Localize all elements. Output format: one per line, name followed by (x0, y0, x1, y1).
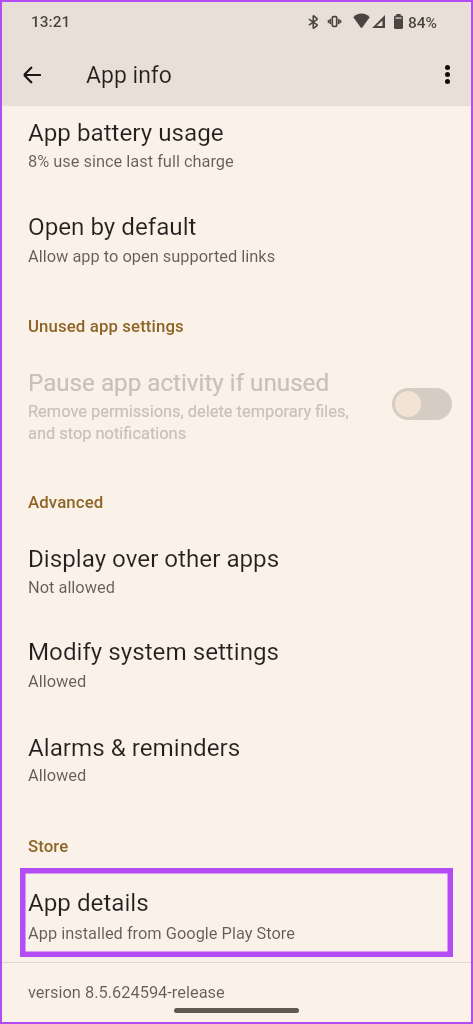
staticText: Remove permissions, delete temporary fil… (28, 402, 349, 443)
staticText: App installed from Google Play Store (28, 924, 295, 943)
button[interactable]: App details (20, 868, 453, 957)
staticText: version 8.5.624594-release (28, 983, 225, 1002)
staticText: App details (28, 889, 149, 917)
staticText: Modify system settings (28, 638, 280, 666)
button[interactable]: Back (13, 55, 52, 94)
button[interactable]: Modify system settings (0, 638, 473, 693)
staticText: Store (28, 836, 69, 856)
staticText: Advanced (28, 492, 104, 512)
staticText: Allow app to open supported links (28, 247, 276, 266)
staticText: 84% (408, 14, 438, 32)
staticText: Allowed (28, 766, 87, 785)
staticText: App info (86, 62, 172, 89)
staticText: 8% use since last full charge (28, 152, 234, 171)
staticText: App battery usage (28, 119, 224, 147)
staticText: 13:21 (31, 13, 71, 31)
staticText: Pause app activity if unused (28, 369, 330, 397)
button[interactable]: App battery usage (0, 119, 473, 173)
staticText: Not allowed (28, 578, 115, 597)
button[interactable]: Pause app activity if unused (0, 369, 473, 443)
staticText: Display over other apps (28, 545, 280, 573)
button[interactable]: Display over other apps (0, 545, 473, 599)
staticText: Alarms & reminders (28, 734, 241, 762)
button[interactable]: Alarms & reminders (0, 734, 473, 787)
staticText: Allowed (28, 672, 87, 691)
button[interactable]: Open by default (0, 213, 473, 268)
button[interactable]: Pause app activity if unused (392, 388, 452, 420)
staticText: Open by default (28, 213, 197, 241)
button[interactable]: More options (428, 55, 467, 94)
staticText: Unused app settings (28, 316, 184, 336)
